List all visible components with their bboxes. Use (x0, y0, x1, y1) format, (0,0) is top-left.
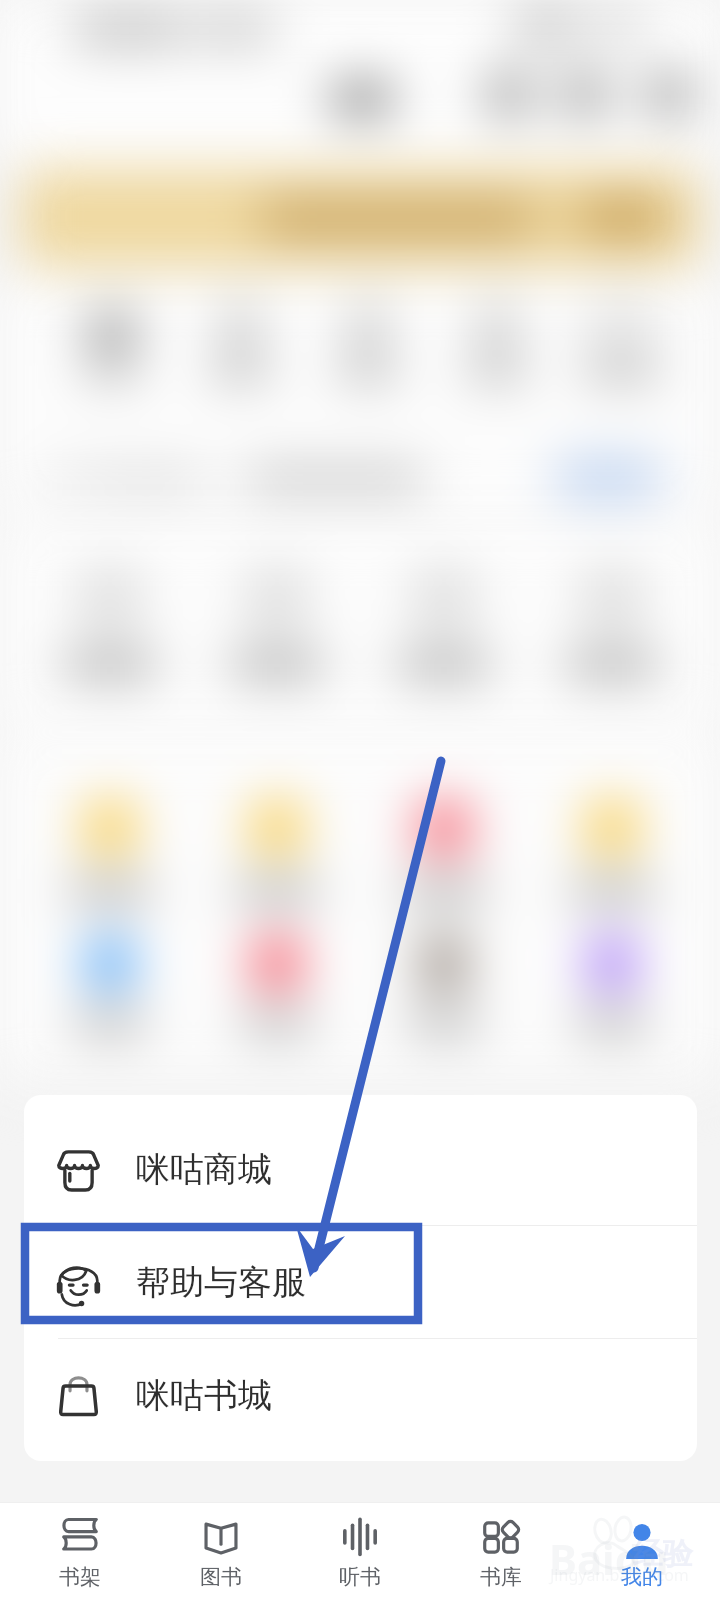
staticText: 帮助与客服 (136, 1261, 306, 1304)
staticText: 书库 (480, 1564, 522, 1590)
button[interactable]: 帮助与客服 (24, 1226, 697, 1338)
button[interactable]: 我的 (580, 1502, 704, 1600)
staticText: 经验 (633, 1535, 693, 1573)
staticText: 我的 (621, 1564, 663, 1590)
button[interactable]: 图书 (159, 1502, 283, 1600)
button[interactable]: 咪咕商城 (24, 1113, 697, 1225)
staticText: 咪咕商城 (136, 1148, 272, 1191)
button[interactable]: 咪咕书城 (24, 1339, 697, 1451)
staticText: 图书 (200, 1564, 242, 1590)
staticText: 书架 (59, 1564, 101, 1590)
staticText: Baidu (549, 1530, 669, 1587)
button[interactable]: 书架 (18, 1502, 142, 1600)
staticText: 听书 (339, 1564, 381, 1590)
button[interactable]: 听书 (298, 1502, 422, 1600)
button[interactable]: 书库 (439, 1502, 563, 1600)
staticText: Jingyan.baidu.com (550, 1564, 689, 1586)
staticText: 咪咕书城 (136, 1374, 272, 1417)
